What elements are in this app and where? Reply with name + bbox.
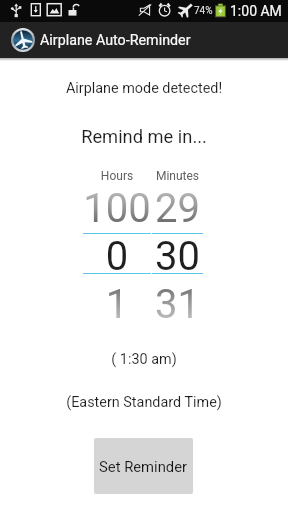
staticText: 100 [83, 185, 151, 227]
staticText: 1 [83, 281, 151, 323]
staticText: ( 1:30 am) [0, 351, 288, 368]
staticText: Minutes [152, 169, 203, 183]
button[interactable]: 100 [83, 185, 151, 323]
staticText: Remind me in... [0, 126, 288, 147]
button[interactable]: 29 [152, 185, 203, 323]
staticText: 31 [152, 281, 203, 323]
staticText: Hours [83, 169, 151, 183]
staticText: 1:00 AM [230, 3, 282, 19]
staticText: 30 [152, 233, 203, 275]
button[interactable]: Set Reminder [94, 438, 193, 494]
staticText: 74% [194, 5, 213, 17]
staticText: Airplane Auto-Reminder [40, 32, 191, 49]
staticText: 29 [152, 185, 203, 227]
staticText: Airplane mode detected! [0, 80, 288, 97]
staticText: 0 [83, 233, 151, 275]
staticText: (Eastern Standard Time) [0, 394, 288, 411]
staticText: Set Reminder [99, 458, 188, 475]
